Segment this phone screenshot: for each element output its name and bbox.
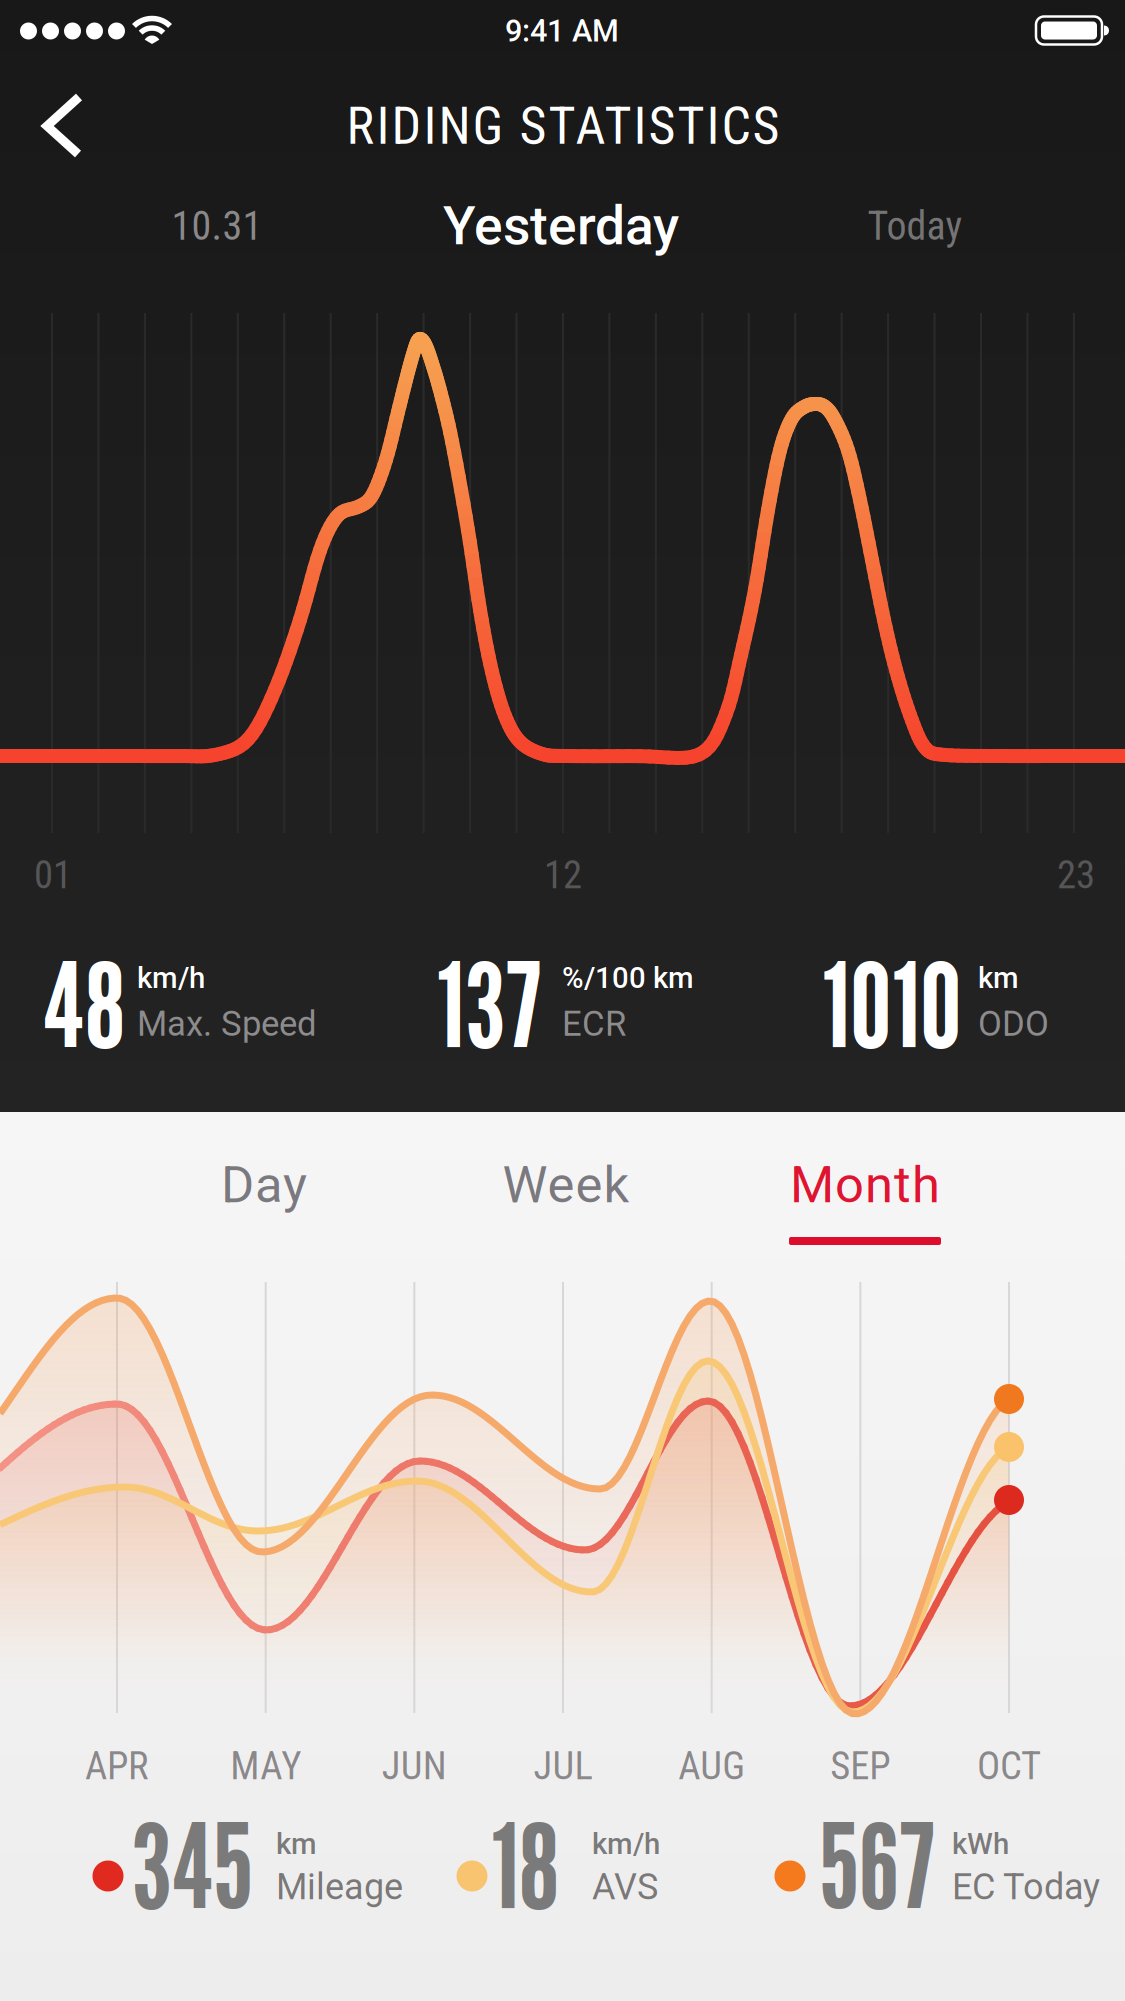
staticText: Month: [790, 1155, 940, 1215]
staticText: km/h: [137, 961, 205, 995]
staticText: AVS: [592, 1866, 658, 1908]
button[interactable]: Today: [825, 191, 1005, 261]
staticText: Week: [502, 1155, 629, 1215]
staticText: 567: [819, 1795, 935, 1935]
button[interactable]: Day: [144, 1140, 384, 1230]
staticText: MAY: [230, 1743, 301, 1789]
staticText: Day: [221, 1155, 307, 1215]
button[interactable]: 10.31: [127, 191, 307, 261]
staticText: RIDING STATISTICS: [346, 95, 779, 156]
button[interactable]: Month: [745, 1140, 985, 1230]
staticText: AUG: [678, 1743, 745, 1789]
staticText: 12: [544, 852, 582, 898]
staticText: 9:41 AM: [505, 13, 619, 49]
staticText: %/100 km: [562, 961, 694, 995]
staticText: 48: [43, 934, 125, 1074]
staticText: ODO: [978, 1004, 1049, 1044]
button[interactable]: Back: [0, 0, 90, 120]
staticText: 01: [34, 852, 72, 898]
staticText: OCT: [977, 1743, 1041, 1789]
staticText: 10.31: [171, 203, 262, 249]
staticText: 345: [131, 1795, 253, 1935]
staticText: 23: [1057, 852, 1095, 898]
staticText: Mileage: [276, 1866, 403, 1908]
staticText: SEP: [830, 1743, 890, 1789]
button[interactable]: Week: [446, 1140, 686, 1230]
staticText: km: [276, 1827, 317, 1861]
staticText: km/h: [592, 1827, 660, 1861]
button[interactable]: Yesterday: [371, 191, 751, 261]
staticText: 137: [436, 934, 541, 1074]
staticText: JUL: [533, 1743, 592, 1789]
staticText: 1010: [822, 934, 962, 1074]
staticText: Yesterday: [443, 195, 679, 257]
staticText: EC Today: [952, 1866, 1100, 1908]
staticText: ECR: [562, 1004, 626, 1044]
staticText: JUN: [382, 1743, 447, 1789]
staticText: APR: [85, 1743, 149, 1789]
staticText: 18: [491, 1795, 559, 1935]
staticText: Today: [867, 203, 962, 249]
staticText: Max. Speed: [137, 1004, 317, 1044]
staticText: kWh: [952, 1827, 1009, 1861]
staticText: km: [978, 961, 1019, 995]
